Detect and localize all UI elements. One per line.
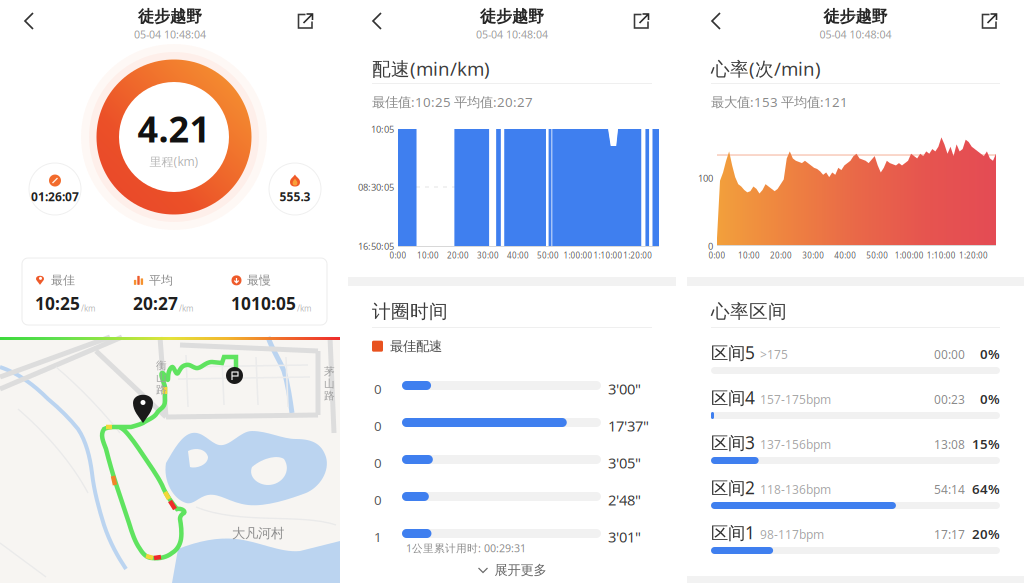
staticText: 1010:05 bbox=[231, 292, 296, 315]
staticText: /km bbox=[179, 303, 193, 314]
staticText: 3'05" bbox=[608, 453, 641, 472]
staticText: 10:25 bbox=[35, 292, 80, 315]
staticText: 0 bbox=[374, 454, 382, 472]
staticText: 区间4 bbox=[711, 386, 755, 409]
staticText: 10:00 bbox=[417, 250, 439, 261]
staticText: 64% bbox=[972, 480, 1000, 498]
button[interactable]: Back bbox=[18, 0, 52, 42]
staticText: 20% bbox=[972, 525, 1000, 543]
staticText: 1:20:00 bbox=[959, 250, 988, 261]
button[interactable]: Share bbox=[972, 0, 1006, 42]
staticText: /km bbox=[297, 303, 311, 314]
staticText: 0:00 bbox=[708, 250, 725, 261]
staticText: 山 bbox=[156, 371, 167, 384]
staticText: 徒步越野 bbox=[480, 7, 544, 26]
staticText: 3'01" bbox=[608, 527, 641, 546]
staticText: 40:00 bbox=[834, 250, 856, 261]
staticText: 徒步越野 bbox=[138, 7, 202, 26]
button[interactable]: Share bbox=[288, 0, 322, 42]
staticText: 区间5 bbox=[711, 341, 755, 364]
staticText: 3'00" bbox=[608, 379, 641, 398]
staticText: 50:00 bbox=[537, 250, 559, 261]
staticText: 0 bbox=[374, 380, 382, 398]
staticText: 05-04 10:48:04 bbox=[819, 27, 891, 41]
staticText: 13:08 bbox=[934, 436, 965, 452]
staticText: 衡 bbox=[156, 359, 167, 372]
staticText: 计圈时间 bbox=[372, 300, 448, 323]
staticText: 05-04 10:48:04 bbox=[476, 27, 548, 41]
staticText: 展开更多 bbox=[494, 562, 546, 578]
button[interactable]: Back bbox=[366, 0, 400, 42]
staticText: 0:00 bbox=[389, 250, 406, 261]
staticText: 0% bbox=[980, 345, 1000, 363]
staticText: 17:17 bbox=[934, 526, 965, 542]
staticText: 最大值:153 平均值:121 bbox=[711, 93, 848, 111]
button[interactable]: Back bbox=[705, 0, 739, 42]
staticText: 心率区间 bbox=[711, 300, 787, 323]
button[interactable]: Share bbox=[624, 0, 658, 42]
staticText: >175 bbox=[760, 346, 788, 362]
staticText: 1:20:00 bbox=[623, 250, 652, 261]
staticText: 50:00 bbox=[866, 250, 888, 261]
staticText: 区间1 bbox=[711, 521, 755, 544]
staticText: 10:00 bbox=[738, 250, 760, 261]
staticText: 最佳 bbox=[51, 273, 75, 288]
staticText: 心率(次/min) bbox=[711, 56, 821, 81]
staticText: 山 bbox=[324, 377, 335, 390]
staticText: /km bbox=[81, 303, 95, 314]
staticText: 路 bbox=[156, 383, 167, 396]
staticText: 20:00 bbox=[770, 250, 792, 261]
staticText: 最佳配速 bbox=[390, 338, 442, 354]
staticText: 555.3 bbox=[279, 188, 310, 204]
staticText: 05-04 10:48:04 bbox=[134, 27, 206, 41]
staticText: 17'37" bbox=[608, 416, 649, 435]
staticText: 大凡河村 bbox=[232, 525, 284, 541]
staticText: 1:00:00 bbox=[895, 250, 924, 261]
staticText: 40:00 bbox=[507, 250, 529, 261]
staticText: 1:10:00 bbox=[927, 250, 956, 261]
staticText: 157-175bpm bbox=[760, 391, 831, 407]
staticText: 1:00:00 bbox=[563, 250, 592, 261]
staticText: 徒步越野 bbox=[823, 7, 887, 26]
staticText: 0 bbox=[374, 491, 382, 509]
staticText: 最慢 bbox=[247, 273, 271, 288]
staticText: 00:23 bbox=[934, 391, 965, 407]
staticText: 137-156bpm bbox=[760, 436, 831, 452]
staticText: 20:27 bbox=[133, 292, 178, 315]
staticText: 里程(km) bbox=[149, 153, 198, 169]
staticText: 区间3 bbox=[711, 431, 755, 454]
staticText: 最佳值:10:25 平均值:20:27 bbox=[372, 93, 533, 111]
staticText: 01:26:07 bbox=[31, 188, 79, 204]
button[interactable]: 展开更多 bbox=[348, 557, 676, 583]
staticText: 98-117bpm bbox=[760, 526, 824, 542]
staticText: 54:14 bbox=[934, 481, 965, 497]
staticText: 1公里累计用时: 00:29:31 bbox=[406, 541, 526, 555]
staticText: 15% bbox=[972, 435, 1000, 453]
staticText: 100 bbox=[698, 172, 713, 184]
staticText: 0 bbox=[708, 240, 713, 252]
staticText: 00:00 bbox=[934, 346, 965, 362]
staticText: 区间2 bbox=[711, 476, 755, 499]
staticText: 2'48" bbox=[608, 490, 641, 509]
staticText: 0 bbox=[374, 417, 382, 435]
staticText: 16:50:05 bbox=[358, 240, 394, 252]
staticText: 30:00 bbox=[802, 250, 824, 261]
staticText: 20:00 bbox=[447, 250, 469, 261]
staticText: 茅 bbox=[324, 365, 335, 378]
staticText: 平均 bbox=[149, 273, 173, 288]
staticText: 08:30:05 bbox=[358, 181, 394, 193]
staticText: 30:00 bbox=[477, 250, 499, 261]
staticText: 4.21 bbox=[137, 105, 210, 152]
staticText: 0% bbox=[980, 390, 1000, 408]
staticText: 118-136bpm bbox=[760, 481, 831, 497]
staticText: 1 bbox=[374, 528, 382, 546]
staticText: 配速(min/km) bbox=[372, 56, 490, 81]
staticText: 10:05 bbox=[371, 123, 394, 135]
staticText: 1:10:00 bbox=[593, 250, 622, 261]
staticText: 路 bbox=[324, 389, 335, 402]
